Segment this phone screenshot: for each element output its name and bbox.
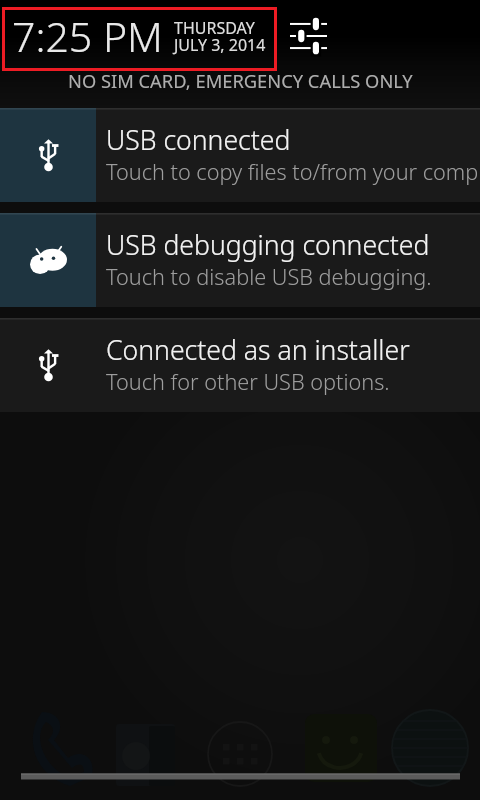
staticText: USB connected [106,122,291,158]
staticText: THURSDAY [174,17,255,39]
staticText: Connected as an installer [106,332,410,368]
staticText: Touch to disable USB debugging. [106,262,432,292]
button[interactable]: USB connected [0,108,480,202]
staticText: USB debugging connected [106,227,430,263]
staticText: NO SIM CARD, EMERGENCY CALLS ONLY [68,68,413,93]
button[interactable]: Connected as an installer [0,318,480,412]
button[interactable]: Quick settings [283,11,333,61]
staticText: Touch to copy files to/from your compute… [106,157,480,187]
staticText: Touch for other USB options. [106,367,390,397]
button[interactable]: USB debugging connected [0,213,480,307]
staticText: 7:25 PM [12,8,163,64]
staticText: JULY 3, 2014 [174,34,266,56]
button[interactable]: Close notification shade [21,773,460,780]
